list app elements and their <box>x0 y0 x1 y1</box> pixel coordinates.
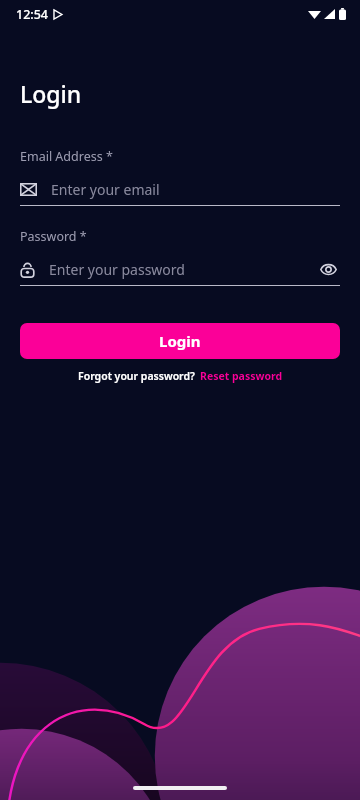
staticText: Forgot your password? <box>78 369 195 383</box>
button[interactable]: Enter your password <box>20 256 340 282</box>
button[interactable]: Enter your email <box>20 176 340 202</box>
button[interactable]: Reset password <box>200 369 283 383</box>
staticText: Login <box>159 331 201 351</box>
staticText: Password * <box>20 228 87 245</box>
staticText: 12:54 <box>16 6 49 23</box>
staticText: Enter your email <box>51 180 340 199</box>
staticText: Login <box>20 78 82 109</box>
button[interactable]: Login <box>20 323 340 359</box>
staticText: Email Address * <box>20 148 113 165</box>
staticText: Enter your password <box>49 260 316 279</box>
button[interactable]: Show password <box>316 257 340 281</box>
staticText: Reset password <box>200 369 283 383</box>
